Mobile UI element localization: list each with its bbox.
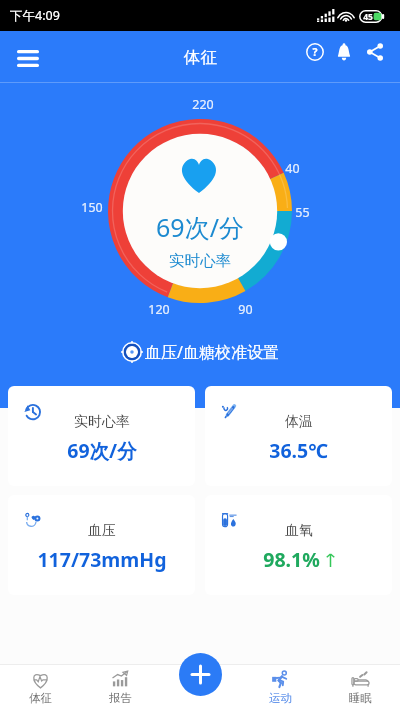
- button[interactable]: 血压: [8, 495, 195, 595]
- staticText: ?: [312, 45, 318, 59]
- button[interactable]: Share: [358, 35, 392, 69]
- button[interactable]: 报告: [80, 664, 160, 711]
- staticText: 报告: [109, 691, 132, 705]
- staticText: 体征: [184, 47, 217, 68]
- staticText: 血氧: [285, 522, 313, 540]
- staticText: 45: [363, 11, 373, 23]
- staticText: 117/73mmHg: [37, 546, 167, 573]
- button[interactable]: 运动: [240, 664, 320, 711]
- button[interactable]: Notifications: [327, 35, 361, 69]
- button[interactable]: Add: [179, 653, 222, 696]
- staticText: 下午4:09: [10, 7, 60, 24]
- staticText: 55: [295, 204, 310, 221]
- button[interactable]: Help: [298, 35, 332, 69]
- staticText: 69次/分: [67, 437, 137, 464]
- staticText: 体温: [285, 413, 313, 431]
- button[interactable]: 体征: [0, 664, 80, 711]
- staticText: 120: [148, 301, 170, 318]
- staticText: 69次/分: [156, 210, 244, 244]
- button[interactable]: 血压/血糖校准设置: [121, 337, 279, 367]
- staticText: 220: [192, 96, 214, 113]
- button[interactable]: 实时心率: [8, 386, 195, 486]
- staticText: 98.1%: [263, 546, 320, 573]
- staticText: 实时心率: [169, 251, 231, 271]
- staticText: 运动: [269, 691, 292, 705]
- button[interactable]: 睡眠: [320, 664, 400, 711]
- staticText: 36.5℃: [269, 437, 328, 464]
- button[interactable]: 体温: [205, 386, 392, 486]
- button[interactable]: Menu: [8, 38, 48, 78]
- button[interactable]: 血氧: [205, 495, 392, 595]
- staticText: 体征: [29, 691, 52, 705]
- staticText: 90: [238, 301, 253, 318]
- staticText: 40: [285, 160, 300, 177]
- staticText: 血压: [88, 522, 116, 540]
- staticText: 实时心率: [74, 413, 130, 431]
- staticText: 150: [81, 199, 103, 216]
- staticText: 血压/血糖校准设置: [145, 341, 279, 363]
- staticText: 睡眠: [349, 691, 372, 705]
